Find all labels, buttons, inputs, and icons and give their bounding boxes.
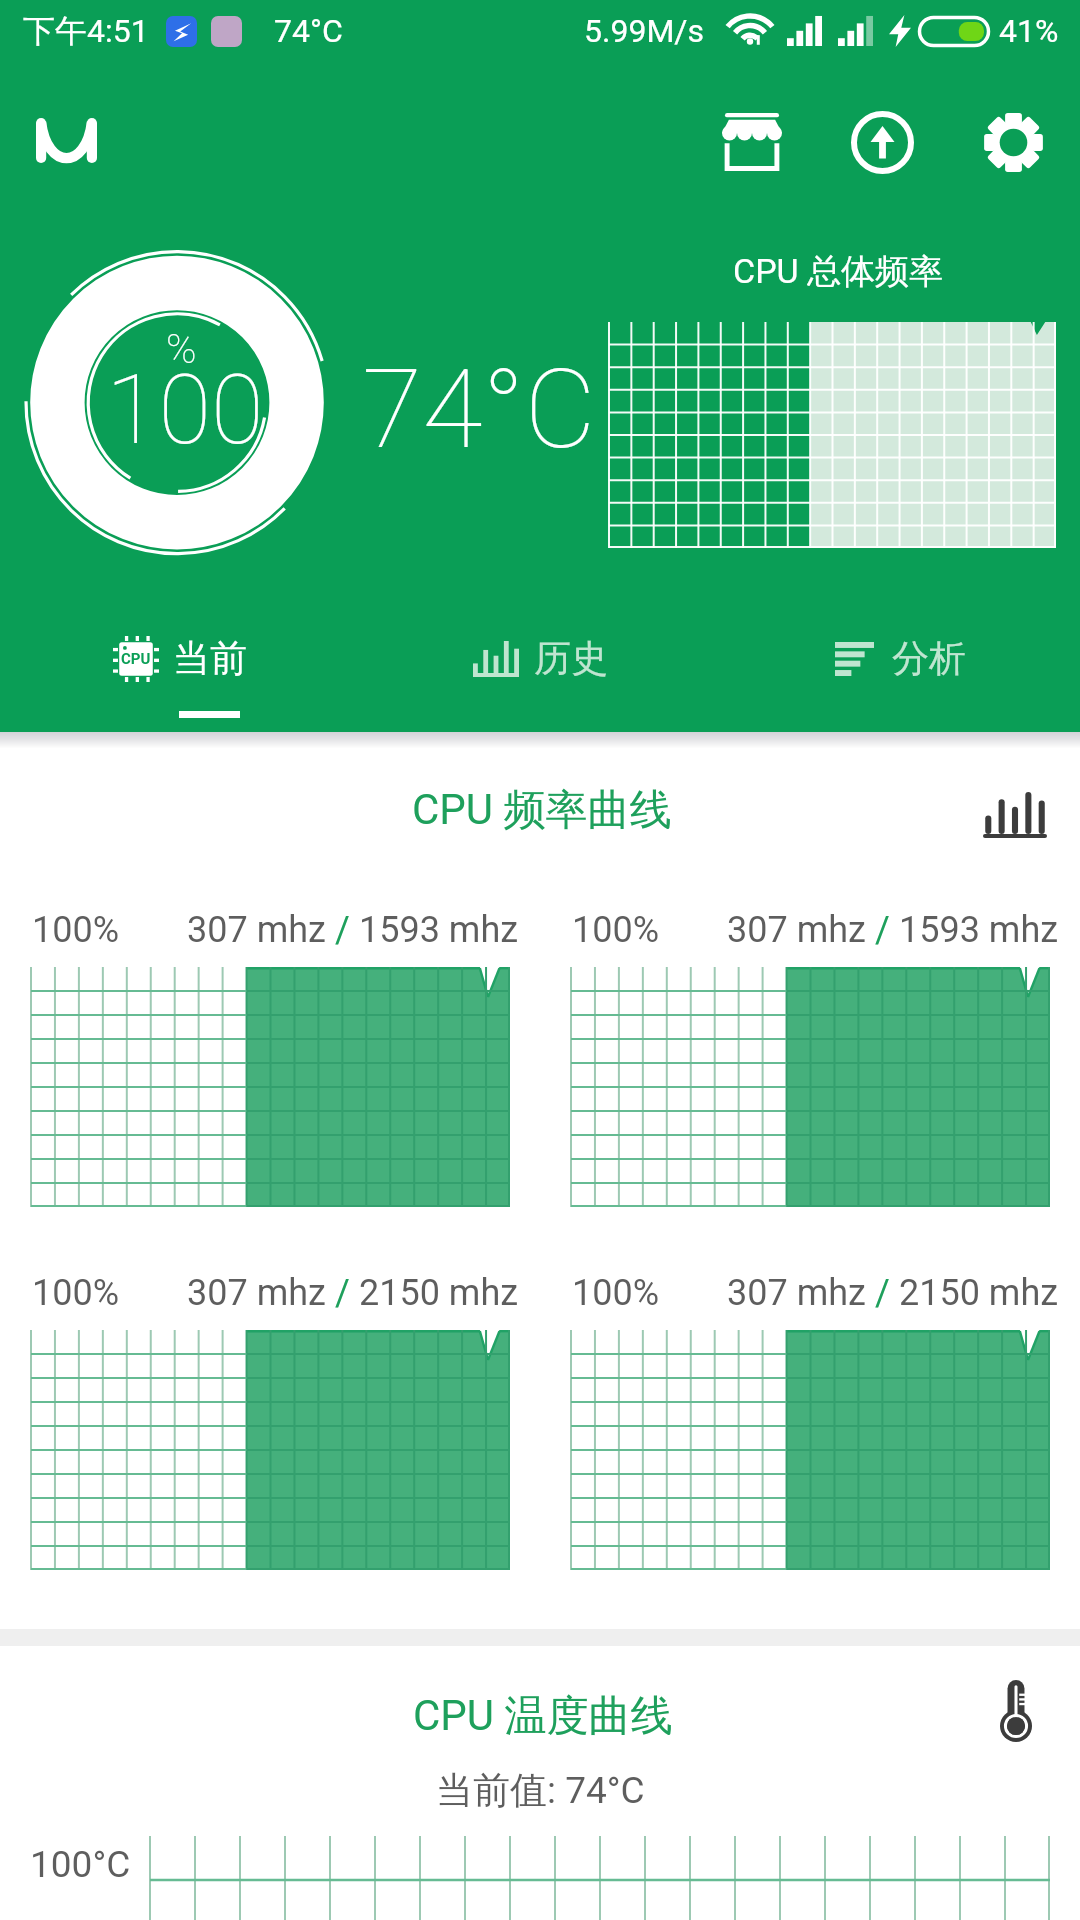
staticText: / — [326, 1272, 359, 1314]
staticText: CPU 总体频率 — [733, 250, 944, 293]
staticText: CPU 频率曲线 — [412, 784, 672, 837]
staticText: 307 mhz — [187, 1272, 326, 1314]
button[interactable]: 分析 — [720, 599, 1080, 717]
button[interactable]: Menu — [11, 85, 121, 195]
button[interactable]: Chart — [975, 774, 1055, 854]
button[interactable]: Temperature — [976, 1671, 1056, 1751]
button[interactable]: 历史 — [360, 599, 720, 717]
staticText: CPU 温度曲线 — [413, 1690, 673, 1743]
staticText: 1593 mhz — [899, 909, 1059, 951]
staticText: 当前 — [173, 635, 247, 682]
staticText: 100 — [106, 354, 264, 467]
button[interactable]: CPU — [0, 599, 360, 717]
button[interactable]: Store — [697, 87, 807, 197]
staticText: 307 mhz — [727, 1272, 866, 1314]
staticText: 2150 mhz — [899, 1272, 1059, 1314]
staticText: 100°C — [30, 1843, 131, 1886]
staticText: 74°C — [274, 12, 343, 50]
staticText: 分析 — [892, 635, 966, 682]
staticText: 307 mhz — [187, 909, 326, 951]
staticText: 当前值: 74°C — [436, 1767, 645, 1814]
staticText: / — [866, 1272, 899, 1314]
staticText: CPU — [121, 650, 151, 668]
staticText: 100% — [32, 1272, 120, 1314]
staticText: 307 mhz — [727, 909, 866, 951]
button[interactable]: Boost — [827, 87, 937, 197]
staticText: 74°C — [362, 345, 596, 474]
staticText: 100% — [572, 1272, 660, 1314]
staticText: 100% — [572, 909, 660, 951]
staticText: 100% — [32, 909, 120, 951]
staticText: / — [866, 909, 899, 951]
staticText: % — [166, 325, 197, 373]
staticText: 下午4:51 — [23, 11, 149, 51]
button[interactable]: Settings — [958, 87, 1068, 197]
staticText: 5.99M/s — [584, 12, 705, 50]
staticText: 1593 mhz — [359, 909, 519, 951]
staticText: 41% — [999, 12, 1059, 50]
staticText: / — [326, 909, 359, 951]
staticText: 历史 — [534, 635, 608, 682]
staticText: 2150 mhz — [359, 1272, 519, 1314]
